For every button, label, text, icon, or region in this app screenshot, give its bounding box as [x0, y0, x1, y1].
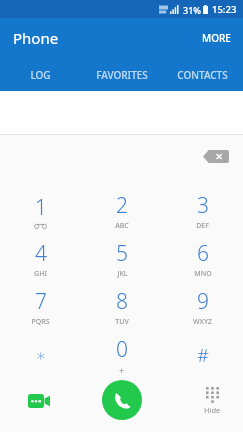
button[interactable]: Video call	[22, 384, 56, 418]
staticText: 1	[35, 193, 47, 222]
button[interactable]: 6	[162, 235, 243, 283]
staticText: 7	[35, 287, 47, 316]
staticText: LOG	[30, 68, 51, 82]
button[interactable]: LOG	[0, 58, 81, 91]
staticText: Hide	[204, 405, 221, 415]
button[interactable]: CONTACTS	[162, 58, 243, 91]
staticText: +	[119, 364, 125, 376]
staticText: 5	[116, 239, 128, 268]
staticText: 31%	[183, 4, 201, 16]
button[interactable]: 4	[0, 235, 81, 283]
staticText: TUV	[115, 317, 129, 327]
staticText: 15:23	[212, 3, 237, 16]
button[interactable]: 0	[81, 331, 162, 379]
staticText: GHI	[34, 269, 47, 279]
button[interactable]: Hide keypad	[200, 383, 225, 419]
staticText: ∗	[35, 345, 47, 366]
staticText: 2	[116, 191, 128, 220]
button[interactable]: 3	[162, 187, 243, 235]
staticText: CONTACTS	[177, 68, 228, 82]
staticText: 3	[197, 191, 209, 220]
button[interactable]: 1	[0, 187, 81, 235]
staticText: 9	[197, 287, 209, 316]
button[interactable]: 7	[0, 283, 81, 331]
button[interactable]: Call	[102, 380, 142, 420]
button[interactable]: ∗	[0, 331, 81, 379]
staticText: 0	[116, 335, 128, 364]
staticText: ABC	[115, 221, 129, 231]
button[interactable]: 9	[162, 283, 243, 331]
button[interactable]: 5	[81, 235, 162, 283]
staticText: MORE	[202, 31, 231, 45]
staticText: 8	[116, 287, 128, 316]
staticText: WXYZ	[193, 317, 212, 327]
button[interactable]: MORE	[190, 23, 243, 53]
staticText: Phone	[13, 28, 59, 48]
button[interactable]: 8	[81, 283, 162, 331]
staticText: JKL	[117, 269, 128, 279]
button[interactable]: Backspace	[203, 150, 229, 163]
staticText: PQRS	[31, 317, 50, 327]
button[interactable]: 2	[81, 187, 162, 235]
button[interactable]: #	[162, 331, 243, 379]
button[interactable]: FAVORITES	[81, 58, 162, 91]
staticText: DEF	[196, 221, 209, 231]
staticText: 6	[197, 239, 209, 268]
staticText: #	[197, 343, 209, 368]
staticText: FAVORITES	[96, 68, 148, 82]
staticText: MNO	[194, 269, 212, 279]
staticText: 4	[35, 239, 47, 268]
